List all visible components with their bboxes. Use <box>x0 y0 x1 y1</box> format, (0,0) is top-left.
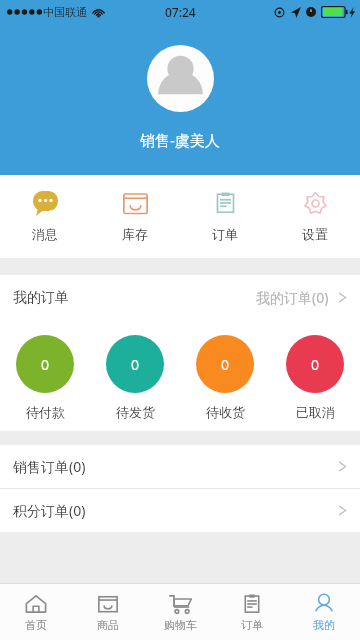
staticText: 中国联通 <box>43 5 87 19</box>
button[interactable]: 消息 <box>0 175 90 258</box>
staticText: 我的订单 <box>13 289 69 307</box>
staticText: 消息 <box>32 226 58 242</box>
button[interactable]: 购物车 <box>144 584 216 640</box>
staticText: 待发货 <box>116 404 155 420</box>
staticText: 库存 <box>122 226 148 242</box>
staticText: 我的 <box>313 618 335 632</box>
button[interactable]: 销售订单(0) <box>0 445 360 488</box>
staticText: 订单 <box>241 618 263 632</box>
button[interactable]: Profile <box>0 24 360 175</box>
staticText: 销售订单(0) <box>13 457 86 476</box>
button[interactable]: 0 <box>180 320 270 431</box>
button[interactable]: 我的订单 <box>0 275 360 320</box>
staticText: 待收货 <box>206 404 245 420</box>
button[interactable]: 首页 <box>0 584 72 640</box>
button[interactable]: 积分订单(0) <box>0 489 360 532</box>
button[interactable]: 订单 <box>216 584 288 640</box>
button[interactable]: 我的 <box>288 584 360 640</box>
staticText: 0 <box>311 355 320 374</box>
staticText: 0 <box>131 355 140 374</box>
staticText: 首页 <box>25 618 47 632</box>
button[interactable]: 0 <box>0 320 90 431</box>
staticText: 待付款 <box>26 404 65 420</box>
button[interactable]: 设置 <box>270 175 360 258</box>
staticText: 销售-虞美人 <box>140 130 220 150</box>
button[interactable]: 库存 <box>90 175 180 258</box>
staticText: 我的订单(0) <box>256 288 329 307</box>
staticText: 购物车 <box>164 618 197 632</box>
staticText: 订单 <box>212 226 238 242</box>
staticText: 0 <box>41 355 50 374</box>
staticText: 07:24 <box>165 4 196 20</box>
button[interactable]: 商品 <box>72 584 144 640</box>
staticText: 设置 <box>302 226 328 242</box>
staticText: 0 <box>221 355 230 374</box>
button[interactable]: 0 <box>90 320 180 431</box>
button[interactable]: 订单 <box>180 175 270 258</box>
staticText: 已取消 <box>296 404 335 420</box>
button[interactable]: 0 <box>270 320 360 431</box>
staticText: 积分订单(0) <box>13 501 86 520</box>
staticText: 商品 <box>97 618 119 632</box>
